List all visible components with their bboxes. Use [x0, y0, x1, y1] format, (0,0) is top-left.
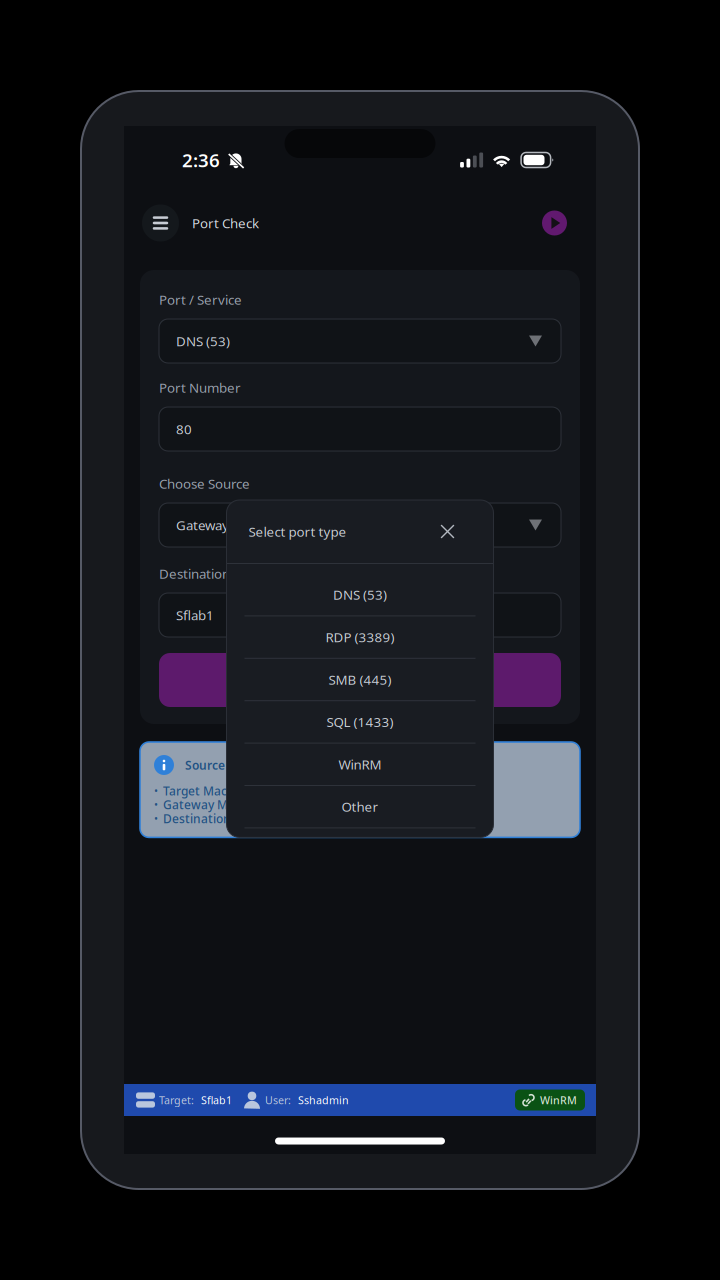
staticText: WinRM: [338, 755, 381, 773]
staticText: Source vs Destination: [185, 757, 312, 773]
staticText: SMB (445): [328, 671, 391, 688]
staticText: 80: [176, 420, 192, 438]
button[interactable]: Menu: [142, 204, 179, 241]
staticText: Gateway Machine: optional jump host: [163, 797, 381, 813]
staticText: 2:36: [182, 148, 220, 172]
button[interactable]: SQL (1433): [226, 701, 493, 744]
staticText: Port Number: [159, 379, 241, 396]
staticText: Destination: target of the port check: [163, 810, 374, 826]
staticText: Target:: [159, 1093, 194, 1107]
button[interactable]: RDP (3389): [226, 616, 493, 659]
staticText: Sshadmin: [298, 1093, 349, 1107]
staticText: •: [154, 811, 158, 826]
staticText: SQL (1433): [326, 713, 393, 731]
button[interactable]: Close: [437, 521, 457, 541]
staticText: Other: [341, 798, 378, 815]
staticText: Port / Service: [159, 291, 242, 308]
button[interactable]: DNS (53): [159, 319, 561, 363]
staticText: DNS (53): [333, 586, 387, 603]
button[interactable]: DNS (53): [226, 574, 493, 616]
staticText: Sflab1: [176, 606, 214, 624]
staticText: Check Port: [321, 670, 398, 690]
staticText: DNS (53): [176, 332, 230, 350]
staticText: Target Machine: the host you test from: [163, 783, 388, 799]
staticText: Choose Source: [159, 475, 250, 492]
button[interactable]: WinRM: [226, 744, 493, 786]
button[interactable]: Run port check: [542, 210, 567, 235]
staticText: WinRM: [540, 1093, 577, 1107]
staticText: Port Check: [192, 214, 259, 232]
button[interactable]: WinRM: [515, 1089, 585, 1110]
button[interactable]: SMB (445): [226, 659, 493, 701]
staticText: RDP (3389): [325, 628, 394, 646]
staticText: Gateway Machine: [176, 516, 284, 534]
staticText: Sflab1: [201, 1093, 232, 1107]
staticText: •: [154, 798, 158, 812]
staticText: Select port type: [248, 523, 346, 540]
staticText: User:: [265, 1093, 291, 1107]
staticText: •: [154, 784, 158, 798]
button[interactable]: Gateway Machine: [159, 503, 561, 547]
button[interactable]: Other: [226, 786, 493, 828]
staticText: Destination: [159, 565, 230, 582]
button[interactable]: Check Port: [159, 653, 561, 707]
